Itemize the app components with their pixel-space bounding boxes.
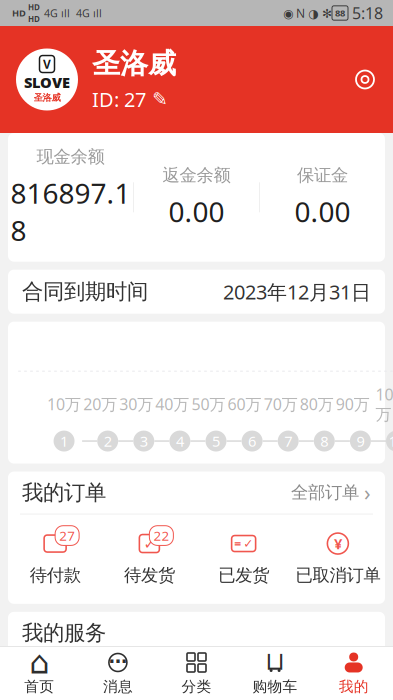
staticText: ¥ [334, 534, 342, 553]
button[interactable]: 27 [8, 525, 102, 592]
button[interactable]: 我的 [314, 645, 393, 700]
staticText: 80万 [300, 393, 334, 415]
staticText: ID: 27 [92, 86, 146, 112]
staticText: ⋯ [108, 650, 127, 672]
staticText: V [43, 56, 51, 72]
staticText: 合同到期时间 [22, 279, 148, 305]
staticText: 全部订单 [291, 482, 359, 503]
button[interactable]: ⊔ [236, 645, 314, 700]
staticText: ◉ N ◑ ✻ [283, 5, 332, 21]
staticText: 0.00 [168, 193, 224, 230]
staticText: 3 [140, 431, 148, 451]
staticText: 待付款 [30, 565, 81, 586]
button[interactable]: ✓ [102, 525, 196, 592]
staticText: 我的订单 [22, 479, 106, 506]
button[interactable]: ¥ [291, 525, 385, 592]
staticText: 圣洛威 [92, 46, 176, 81]
staticText: 2 [104, 431, 112, 451]
staticText: ✓ [243, 537, 253, 550]
staticText: 1 [60, 431, 68, 451]
staticText: 88 [335, 7, 345, 19]
staticText: 保证金 [297, 165, 348, 186]
staticText: 4G ıll 4G ıll [44, 6, 102, 20]
staticText: 已发货 [218, 565, 269, 586]
staticText: 100万 [375, 384, 393, 425]
button[interactable]: 地址信息 [102, 677, 196, 700]
button[interactable]: ⋯ [79, 645, 157, 700]
staticText: HD [28, 13, 40, 24]
button[interactable]: ¥ [8, 677, 102, 700]
button[interactable]: 设置 [353, 67, 377, 91]
staticText: ✎ [152, 89, 168, 110]
staticText: 20万 [83, 393, 117, 415]
staticText: HD [12, 7, 26, 19]
staticText: 2023年12月31日 [223, 278, 371, 305]
staticText: HD [28, 2, 40, 12]
staticText: 5:18 [352, 2, 383, 24]
button[interactable]: 编辑 ID [92, 86, 168, 112]
button[interactable]: = [196, 525, 291, 592]
staticText: 60万 [227, 393, 261, 415]
staticText: ⊔ [265, 647, 285, 675]
staticText: › [364, 478, 371, 507]
staticText: 圣洛威 [33, 92, 60, 103]
staticText: 90万 [336, 393, 370, 415]
staticText: 27 [59, 527, 75, 544]
staticText: 40万 [155, 393, 189, 415]
staticText: ☆ [228, 672, 259, 700]
staticText: 我的 [339, 677, 369, 695]
staticText: 待发货 [124, 565, 175, 586]
staticText: 已取消订单 [295, 565, 380, 586]
staticText: ✓ [143, 535, 155, 552]
button[interactable]: 全部订单 [291, 478, 371, 507]
staticText: 9 [356, 431, 364, 451]
staticText: 0.00 [294, 193, 350, 230]
staticText: 返金余额 [162, 165, 230, 186]
staticText: 4 [176, 431, 184, 451]
staticText: 70万 [264, 393, 298, 415]
staticText: ¥ [50, 680, 60, 700]
staticText: 10 [388, 431, 393, 451]
staticText: 10万 [47, 393, 81, 415]
staticText: 购物车 [253, 677, 298, 695]
staticText: 50万 [191, 393, 225, 415]
button[interactable]: ⌂ [0, 645, 79, 700]
staticText: 首页 [24, 677, 54, 695]
staticText: 7 [284, 431, 292, 451]
staticText: 5 [212, 431, 220, 451]
staticText: 分类 [181, 677, 211, 695]
button[interactable]: ☆ [196, 677, 291, 700]
staticText: SLOVE [24, 72, 70, 92]
staticText: 816897.18 [10, 174, 130, 249]
staticText: 22 [153, 527, 169, 544]
staticText: 8 [320, 431, 328, 451]
button[interactable]: 我的商品库存 [291, 667, 385, 700]
staticText: 我的服务 [22, 620, 106, 646]
staticText: 6 [248, 431, 256, 451]
button[interactable]: 合同到期时间 [8, 270, 385, 314]
staticText: ⌂ [29, 644, 49, 681]
staticText: = [234, 536, 241, 551]
staticText: 现金余额 [36, 146, 104, 167]
staticText: ✓ [247, 692, 255, 700]
button[interactable]: 分类 [157, 645, 236, 700]
staticText: 消息 [103, 677, 133, 695]
staticText: 30万 [119, 393, 153, 415]
